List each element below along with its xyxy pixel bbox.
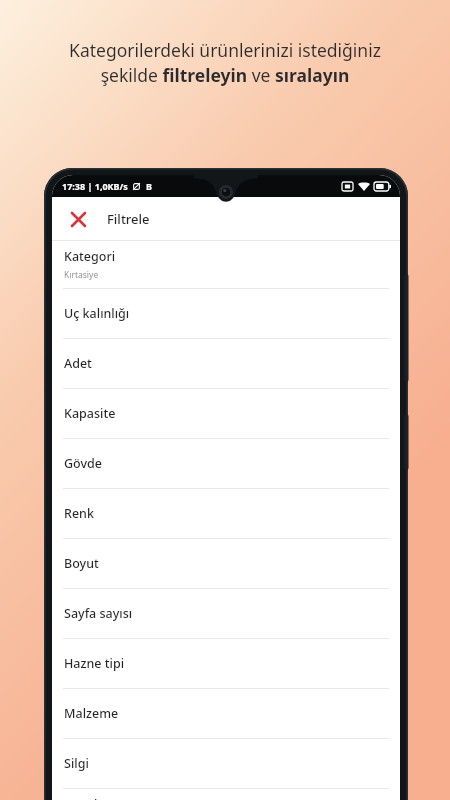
staticText: Kapasite — [64, 405, 116, 422]
staticText: 17:38 | 1,0KB/s — [62, 180, 128, 192]
staticText: Gövde — [64, 455, 102, 472]
button[interactable]: Uç kalınlığı — [52, 289, 400, 338]
staticText: Adet — [64, 355, 92, 372]
button[interactable]: Sayfa sayısı — [52, 589, 400, 638]
staticText: Malzeme — [64, 705, 119, 722]
button[interactable]: Malzeme — [52, 689, 400, 738]
button[interactable]: Kapasite — [52, 389, 400, 438]
staticText: Kategori — [64, 248, 116, 265]
staticText: Renk — [64, 505, 94, 522]
button[interactable]: Boyut — [52, 539, 400, 588]
button[interactable]: Renk — [52, 489, 400, 538]
staticText: Filtrele — [107, 210, 150, 228]
staticText: Kapak — [64, 796, 101, 800]
staticText: Boyut — [64, 555, 99, 572]
staticText: Kırtasiye — [64, 269, 99, 281]
staticText: Sayfa sayısı — [64, 605, 133, 622]
button[interactable]: Silgi — [52, 739, 400, 788]
staticText: Hazne tipi — [64, 655, 125, 672]
staticText: Uç kalınlığı — [64, 305, 130, 322]
button[interactable]: Hazne tipi — [52, 639, 400, 688]
button[interactable]: Kapak — [52, 789, 400, 800]
button[interactable]: Kategori — [52, 241, 400, 288]
button[interactable]: Adet — [52, 339, 400, 388]
staticText: Silgi — [64, 755, 89, 772]
staticText: Kategorilerdeki ürünlerinizi istediğiniz… — [18, 38, 432, 87]
button[interactable]: Kapat — [63, 204, 93, 234]
button[interactable]: Gövde — [52, 439, 400, 488]
staticText: B — [146, 180, 152, 192]
